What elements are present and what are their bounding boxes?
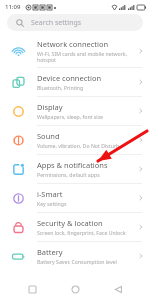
button[interactable]: Security & location — [0, 213, 150, 241]
staticText: Display — [37, 102, 63, 112]
staticText: Security & location — [37, 218, 103, 228]
staticText: Key settings — [37, 200, 67, 207]
staticText: Volume, vibration, Do Not Disturb — [37, 142, 120, 149]
staticText: Sound — [37, 131, 60, 141]
button[interactable]: Recent apps — [21, 278, 43, 300]
staticText: Wallpapers, sleep, font size — [37, 113, 104, 120]
button[interactable]: Network connection — [0, 35, 150, 67]
staticText: i-Smart — [37, 189, 63, 199]
button[interactable]: i-Smart — [0, 184, 150, 212]
button[interactable]: Device connection — [0, 68, 150, 96]
staticText: Search settings — [31, 18, 82, 28]
button[interactable]: Apps & notifications — [0, 155, 150, 183]
button[interactable]: Search settings — [7, 14, 143, 31]
button[interactable]: Display — [0, 97, 150, 125]
button[interactable]: Home — [64, 278, 86, 300]
staticText: Battery — [37, 247, 63, 257]
button[interactable]: Sound — [0, 126, 150, 154]
staticText: Apps & notifications — [37, 160, 108, 170]
staticText: Device connection — [37, 73, 102, 83]
button[interactable]: Battery — [0, 242, 150, 270]
staticText: Screen lock, fingerprint, Face Unlock — [37, 229, 126, 236]
staticText: Bluetooth, Printing — [37, 84, 84, 91]
staticText: Battery Saver, Consumption level — [37, 258, 117, 265]
button[interactable]: Back — [107, 278, 129, 300]
staticText: Wi-Fi, SIM cards and mobile network, hot… — [37, 50, 134, 63]
staticText: Permissions, default apps — [37, 171, 100, 178]
staticText: 11:09 — [5, 3, 21, 11]
staticText: Network connection — [37, 39, 109, 49]
